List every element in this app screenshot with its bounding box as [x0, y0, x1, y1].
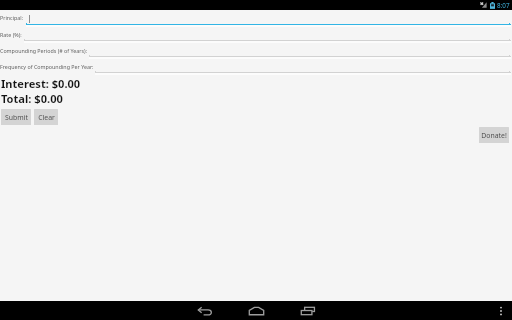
button[interactable] [24, 30, 511, 42]
staticText: Donate! [481, 131, 507, 140]
staticText: Rate (%): [0, 31, 22, 38]
button[interactable]: Donate! [479, 127, 509, 143]
staticText: Submit [5, 113, 28, 122]
staticText: Frequency of Compounding Per Year: [0, 63, 94, 70]
button[interactable] [26, 14, 511, 26]
button[interactable]: Clear [34, 109, 58, 125]
button[interactable]: Home [245, 301, 267, 320]
staticText: 8:07 [497, 1, 510, 10]
button[interactable]: Back [194, 301, 216, 320]
staticText: Clear [38, 113, 55, 122]
button[interactable] [89, 46, 511, 58]
button[interactable]: More options [496, 304, 506, 318]
staticText: Interest: $0.00 [1, 76, 81, 91]
button[interactable]: Recent apps [297, 301, 319, 320]
staticText: Total: $0.00 [1, 91, 63, 106]
button[interactable] [95, 62, 511, 74]
staticText: Principal: [0, 14, 24, 21]
staticText: Compounding Periods (# of Years): [0, 47, 88, 54]
button[interactable]: Submit [1, 109, 31, 125]
